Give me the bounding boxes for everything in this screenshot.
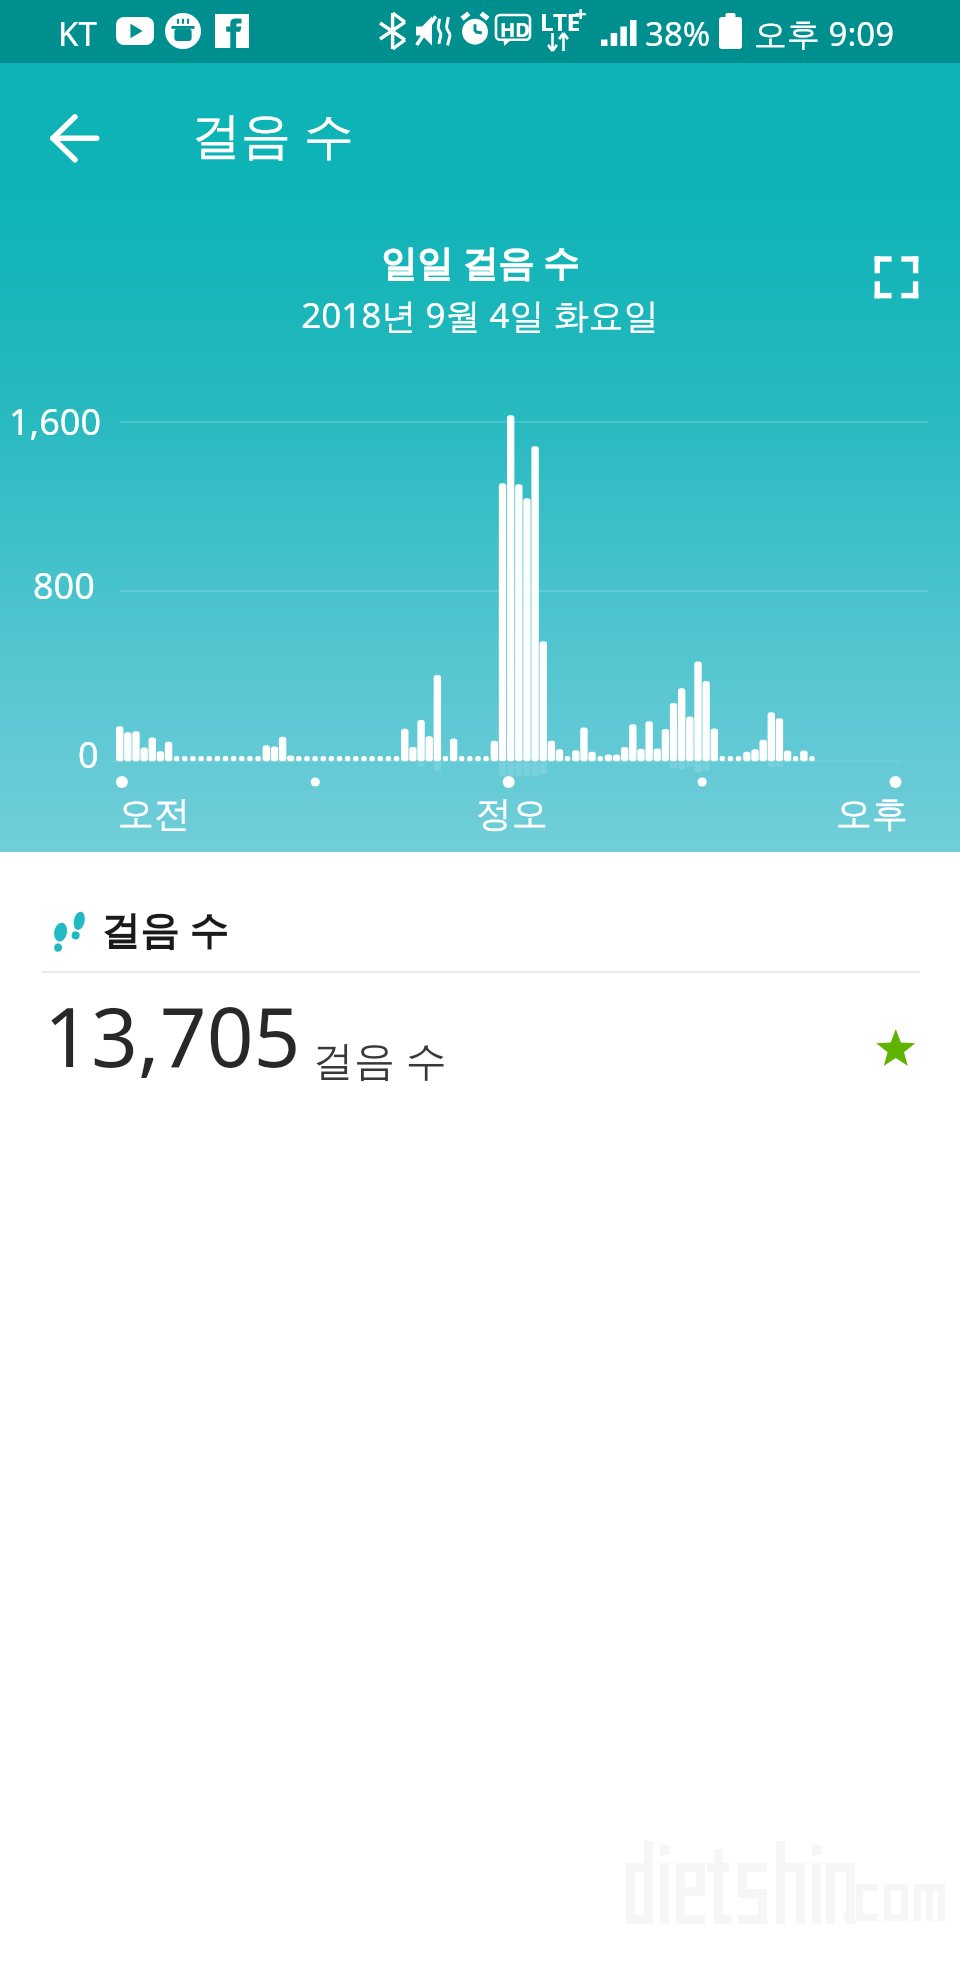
staticText: 걸음 수 xyxy=(101,902,229,955)
staticText: LTE xyxy=(540,5,581,38)
button[interactable]: Full screen xyxy=(853,234,939,320)
staticText: 1,600 xyxy=(9,397,102,446)
staticText: 0 xyxy=(78,730,99,779)
staticText: 걸음 수 xyxy=(313,1031,447,1087)
staticText: + xyxy=(575,0,587,27)
button[interactable]: Favorite xyxy=(856,1012,936,1092)
staticText: 2018년 9월 4일 화요일 xyxy=(0,291,960,339)
button[interactable]: 걸음 수 xyxy=(0,852,960,1152)
button[interactable]: Back xyxy=(32,74,118,160)
staticText: 800 xyxy=(33,561,95,610)
staticText: 오전 xyxy=(118,791,190,836)
staticText: 오후 xyxy=(836,791,908,836)
staticText: 13,705 xyxy=(44,979,301,1091)
staticText: KT xyxy=(58,11,97,56)
staticText: 일일 걸음 수 xyxy=(0,238,960,287)
staticText: 정오 xyxy=(476,791,548,836)
staticText: 걸음 수 xyxy=(191,100,354,168)
staticText: HD xyxy=(500,16,530,43)
staticText: 오후 9:09 xyxy=(754,11,895,56)
staticText: 38% xyxy=(645,11,711,56)
